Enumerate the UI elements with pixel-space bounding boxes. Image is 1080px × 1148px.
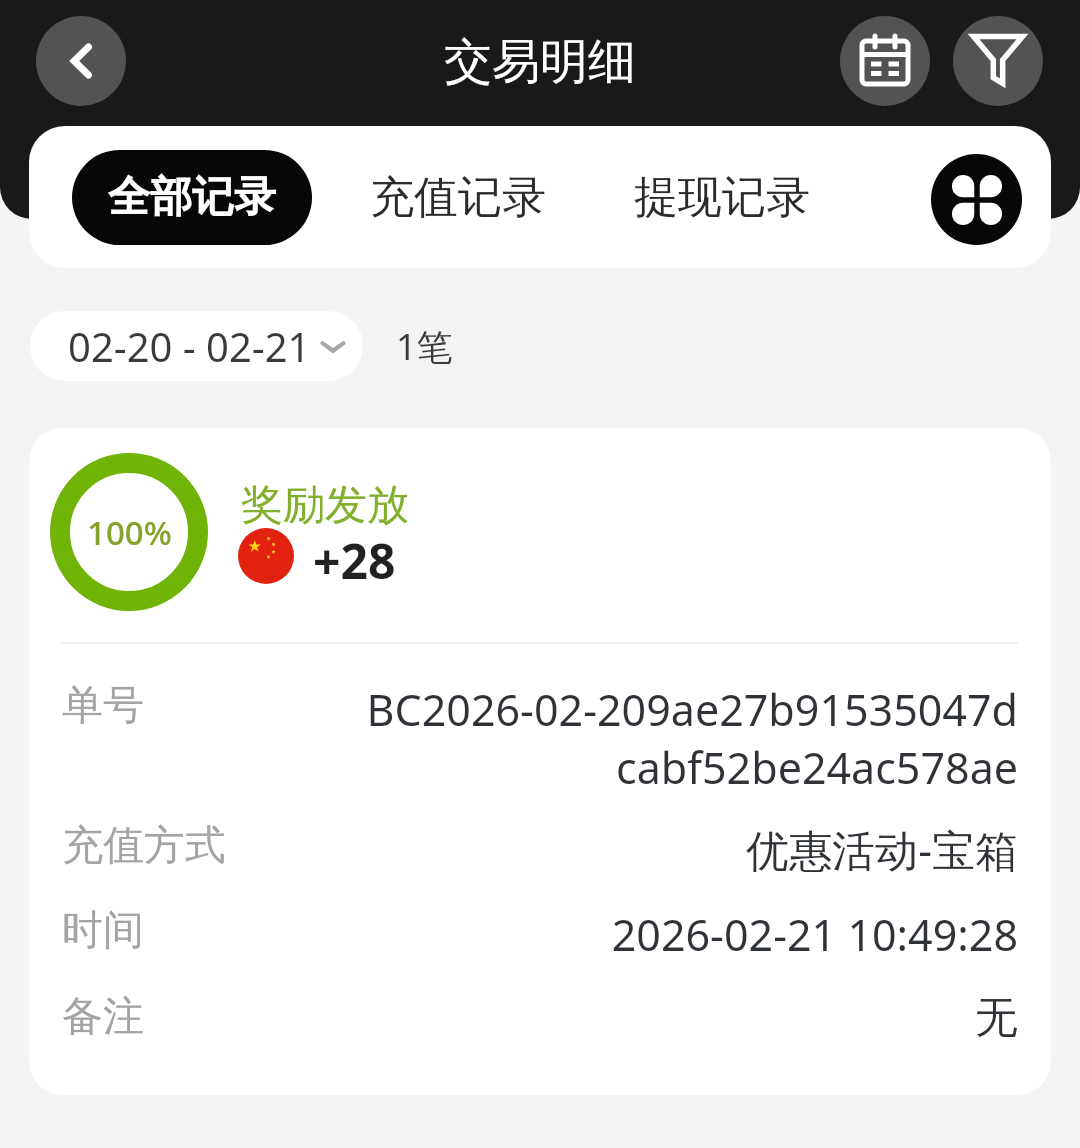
staticText: 无 (62, 991, 1018, 1045)
staticText: 提现记录 (634, 170, 810, 225)
staticText: 时间 (62, 905, 144, 957)
button[interactable]: 充值记录 (349, 150, 567, 245)
button[interactable]: 全部记录 (72, 150, 312, 245)
staticText: 备注 (62, 991, 144, 1043)
staticText: 充值记录 (370, 170, 546, 225)
button[interactable]: Calendar (840, 16, 930, 106)
staticText: +28 (313, 528, 396, 584)
staticText: 奖励发放 (241, 479, 409, 532)
staticText: 充值方式 (62, 820, 226, 872)
staticText: 02-20 - 02-21 (68, 319, 311, 373)
staticText: 优惠活动-宝箱 (62, 820, 1018, 879)
button[interactable]: More options (931, 154, 1022, 245)
staticText: 1笔 (396, 322, 453, 371)
button[interactable]: 02-20 - 02-21 (30, 311, 363, 381)
button[interactable]: 提现记录 (613, 150, 831, 245)
button[interactable]: Filter (953, 16, 1043, 106)
button[interactable]: Back (36, 16, 126, 106)
staticText: 2026-02-21 10:49:28 (62, 905, 1018, 964)
staticText: BC2026-02-209ae27b91535047d cabf52be24ac… (62, 680, 1018, 796)
staticText: 交易明细 (444, 32, 636, 92)
staticText: 100% (87, 510, 172, 555)
staticText: 单号 (62, 680, 144, 732)
staticText: 全部记录 (108, 171, 276, 224)
button[interactable]: 100% (29, 428, 1051, 1095)
